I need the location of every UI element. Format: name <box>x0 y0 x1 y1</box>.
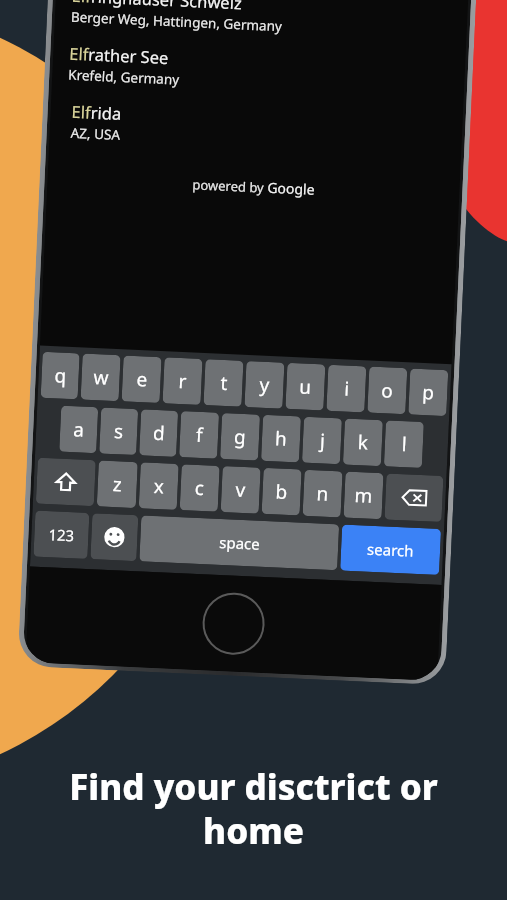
button[interactable]: Emoji <box>90 513 138 561</box>
staticText: p <box>422 379 435 405</box>
button[interactable]: l <box>384 420 424 468</box>
button[interactable]: Backspace <box>384 473 443 522</box>
button[interactable]: search <box>340 524 441 575</box>
button[interactable]: c <box>180 464 220 512</box>
button[interactable]: i <box>326 365 366 412</box>
button[interactable]: y <box>244 361 284 409</box>
button[interactable]: Elfringhauser Schweiz <box>70 0 454 44</box>
staticText: j <box>319 427 326 454</box>
button[interactable]: Elfrather See <box>68 41 451 102</box>
staticText: s <box>114 418 125 444</box>
staticText: Google <box>267 178 316 199</box>
staticText: powered by <box>192 175 268 197</box>
button[interactable]: u <box>285 363 325 410</box>
staticText: i <box>344 375 350 402</box>
staticText: v <box>235 477 246 503</box>
button[interactable]: q <box>41 352 80 399</box>
staticText: d <box>153 420 166 446</box>
staticText: Krefeld, Germany <box>68 66 180 89</box>
button[interactable]: p <box>408 368 448 416</box>
staticText: t <box>220 370 228 396</box>
staticText: a <box>73 416 85 443</box>
staticText: g <box>233 423 247 450</box>
staticText: Elfrather See <box>69 42 170 68</box>
staticText: Berger Weg, Hattingen, Germany <box>70 8 283 35</box>
staticText: k <box>357 429 369 456</box>
button[interactable]: f <box>179 411 219 459</box>
staticText: Find your disctrict or home <box>22 763 485 854</box>
button[interactable]: s <box>99 407 138 455</box>
button[interactable]: x <box>139 462 179 510</box>
button[interactable]: h <box>261 415 301 462</box>
button[interactable]: Shift <box>36 458 96 506</box>
staticText: r <box>178 368 187 394</box>
button[interactable]: space <box>139 515 339 570</box>
staticText: z <box>112 471 122 497</box>
staticText: f <box>195 422 204 448</box>
button[interactable]: r <box>162 357 202 405</box>
staticText: 123 <box>48 524 75 545</box>
staticText: o <box>381 377 394 404</box>
button[interactable]: o <box>367 367 407 414</box>
staticText: Elfrida <box>71 100 122 124</box>
button[interactable]: e <box>121 355 161 403</box>
staticText: m <box>354 482 373 509</box>
staticText: w <box>93 364 109 391</box>
staticText: n <box>316 480 329 507</box>
button[interactable]: w <box>81 353 121 401</box>
staticText: b <box>275 478 288 505</box>
button[interactable]: g <box>220 413 260 461</box>
button[interactable]: t <box>203 359 243 407</box>
staticText: y <box>259 372 270 398</box>
staticText: space <box>219 532 261 554</box>
button[interactable]: d <box>139 409 178 457</box>
button[interactable]: n <box>302 470 342 517</box>
staticText: AZ, USA <box>70 124 121 144</box>
button[interactable]: v <box>221 466 261 514</box>
button[interactable]: b <box>262 468 302 516</box>
button[interactable]: j <box>302 417 342 464</box>
staticText: search <box>367 539 415 561</box>
button[interactable]: 123 <box>33 511 89 559</box>
staticText: Elfringhauser Schweiz <box>71 0 242 13</box>
staticText: h <box>274 425 288 452</box>
staticText: l <box>401 431 407 457</box>
button[interactable]: a <box>59 406 98 453</box>
staticText: q <box>54 362 67 389</box>
staticText: u <box>299 373 312 400</box>
staticText: x <box>153 473 165 499</box>
staticText: e <box>136 366 148 392</box>
button[interactable]: z <box>97 460 138 508</box>
button[interactable]: m <box>343 472 383 519</box>
button[interactable]: Elfrida <box>70 99 449 160</box>
staticText: c <box>194 475 205 501</box>
button[interactable]: k <box>343 418 383 466</box>
